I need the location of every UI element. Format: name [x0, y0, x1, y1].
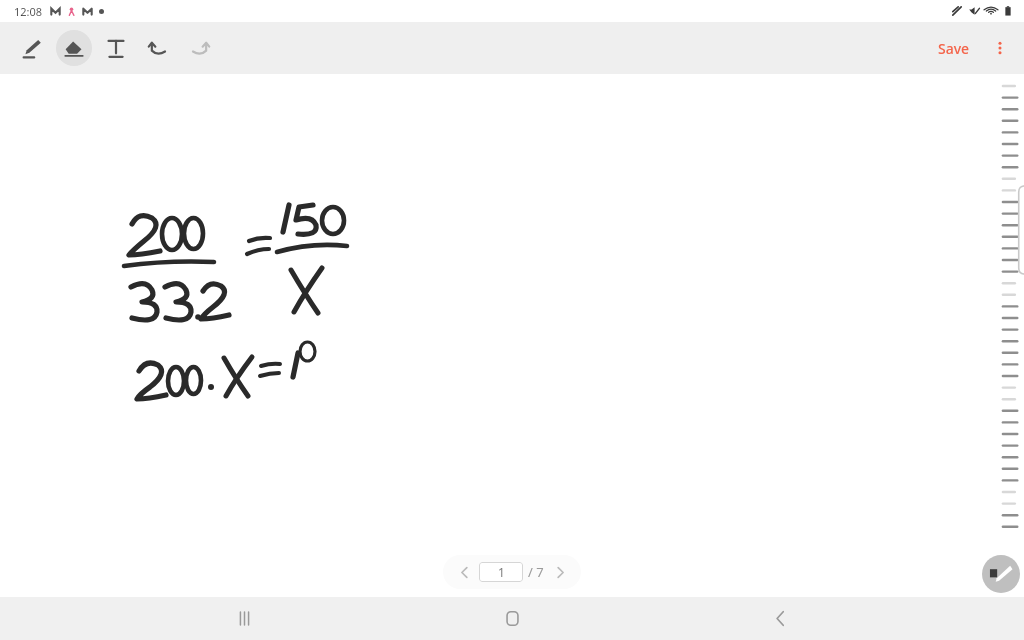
button[interactable]: Recent apps: [220, 597, 268, 640]
button[interactable]: More options: [984, 32, 1016, 64]
staticText: 12:08: [14, 4, 43, 19]
button[interactable]: Previous page: [443, 555, 581, 589]
button[interactable]: Next page: [547, 559, 573, 585]
staticText: Save: [938, 39, 970, 58]
button[interactable]: Home: [488, 597, 536, 640]
button[interactable]: Redo: [182, 30, 218, 66]
button[interactable]: Save: [930, 33, 978, 64]
button[interactable]: 1: [479, 562, 523, 582]
button[interactable]: Back: [756, 597, 804, 640]
button[interactable]: Eraser: [56, 30, 92, 66]
other: Page scrollbar: [1000, 74, 1024, 597]
staticText: / 7: [528, 563, 544, 581]
button[interactable]: Undo: [140, 30, 176, 66]
button[interactable]: Stylus tools: [982, 555, 1020, 593]
button[interactable]: Previous page: [451, 559, 477, 585]
button[interactable]: Pen: [14, 30, 50, 66]
staticText: 1: [498, 564, 505, 580]
button[interactable]: Text: [98, 30, 134, 66]
